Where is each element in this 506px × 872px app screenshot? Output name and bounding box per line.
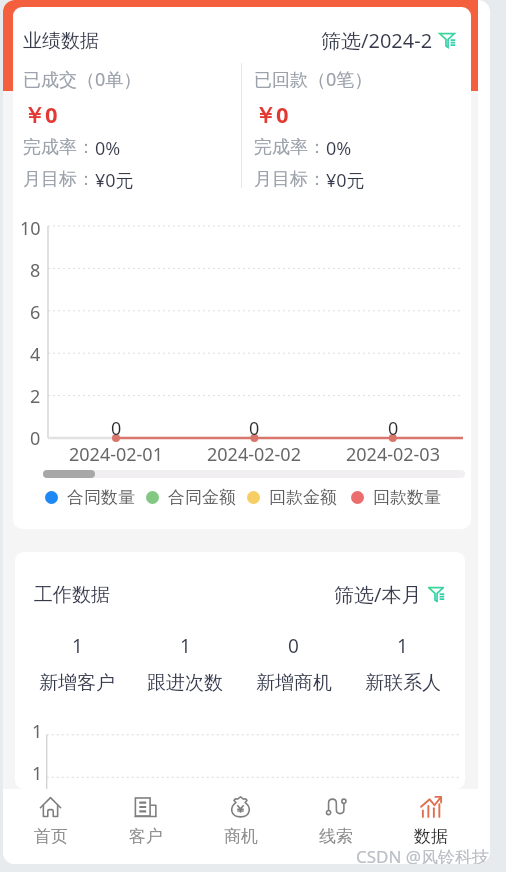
staticText: 0 (288, 633, 299, 659)
staticText: ¥0元 (95, 168, 134, 193)
staticText: 6 (30, 300, 41, 325)
staticText: 客户 (129, 826, 163, 847)
staticText: 0 (111, 416, 122, 441)
staticText: 1 (397, 633, 408, 659)
other: 商机 (229, 796, 252, 818)
staticText: 跟进次数 (147, 671, 223, 695)
staticText: 完成率： (23, 136, 95, 159)
staticText: 月目标： (254, 168, 326, 191)
staticText: ￥0 (23, 99, 58, 129)
staticText: ¥0元 (326, 168, 365, 193)
staticText: 筛选/本月 (334, 581, 422, 608)
staticText: 合同金额 (168, 487, 236, 507)
button[interactable]: 商机 (193, 789, 288, 864)
staticText: 4 (30, 342, 41, 367)
staticText: 商机 (224, 826, 258, 847)
other: 首页 (40, 797, 61, 818)
staticText: 新增客户 (39, 671, 115, 695)
staticText: 回款数量 (373, 487, 441, 507)
staticText: 合同数量 (67, 487, 135, 507)
staticText: 已回款（0笔） (254, 67, 373, 92)
staticText: ￥0 (254, 99, 289, 129)
staticText: 数据 (414, 826, 448, 847)
staticText: 0% (326, 136, 352, 161)
staticText: 1 (72, 633, 83, 659)
staticText: 业绩数据 (23, 29, 99, 53)
staticText: 新联系人 (365, 671, 441, 695)
staticText: 2 (30, 384, 41, 409)
staticText: 2024-02-01 (69, 442, 163, 467)
staticText: 回款金额 (269, 487, 337, 507)
staticText: 首页 (34, 826, 68, 847)
other: 线索 (325, 797, 346, 818)
other: 数据 (420, 796, 442, 818)
staticText: 0 (249, 416, 260, 441)
other: 客户 (134, 796, 157, 818)
staticText: 0% (95, 136, 121, 161)
button[interactable]: 筛选/2024-2 (321, 27, 459, 54)
staticText: 8 (30, 258, 41, 283)
staticText: 新增商机 (256, 671, 332, 695)
staticText: 筛选/2024-2 (321, 27, 433, 54)
staticText: 1 (32, 719, 43, 744)
button[interactable]: 首页 (3, 789, 98, 864)
staticText: 1 (180, 633, 191, 659)
staticText: CSDN @风铃科技 (356, 845, 490, 864)
staticText: 1 (32, 761, 43, 786)
button[interactable]: 线索 (288, 789, 383, 864)
staticText: 2024-02-03 (346, 442, 440, 467)
staticText: 完成率： (254, 136, 326, 159)
staticText: 月目标： (23, 168, 95, 191)
staticText: 线索 (319, 826, 353, 847)
staticText: 0 (30, 426, 41, 451)
button[interactable]: 客户 (98, 789, 193, 864)
staticText: 10 (20, 216, 41, 241)
staticText: 2024-02-02 (207, 442, 301, 467)
staticText: 已成交（0单） (23, 67, 142, 92)
staticText: 工作数据 (34, 583, 110, 607)
button[interactable]: 数据 (383, 789, 478, 864)
staticText: 0 (388, 416, 399, 441)
button[interactable]: 筛选/本月 (334, 581, 448, 608)
